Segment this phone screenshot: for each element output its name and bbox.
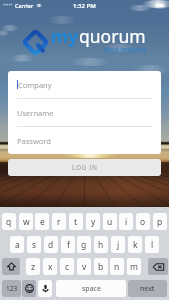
staticText: r: [57, 216, 61, 228]
staticText: g: [81, 239, 87, 251]
button[interactable]: b: [94, 258, 108, 275]
staticText: b: [98, 261, 104, 273]
staticText: u: [107, 216, 113, 228]
button[interactable]: t: [69, 213, 83, 230]
button[interactable]: Password: [17, 127, 161, 154]
button[interactable]: LOG IN: [8, 159, 161, 176]
button[interactable]: Username: [17, 99, 161, 126]
staticText: i: [125, 216, 128, 228]
button[interactable]: Backspace: [148, 258, 168, 275]
staticText: s: [32, 239, 37, 251]
button[interactable]: i: [119, 213, 133, 230]
staticText: d: [48, 239, 54, 251]
staticText: a: [15, 239, 20, 251]
staticText: quorum: [79, 24, 146, 48]
staticText: Carrier: [15, 2, 34, 9]
staticText: k: [133, 239, 138, 251]
button[interactable]: k: [128, 236, 142, 253]
button[interactable]: l: [145, 236, 159, 253]
button[interactable]: c: [60, 258, 74, 275]
button[interactable]: e: [35, 213, 49, 230]
button[interactable]: 123: [2, 280, 21, 297]
staticText: Username: [17, 108, 54, 118]
staticText: Company: [18, 80, 52, 90]
button[interactable]: z: [26, 258, 40, 275]
staticText: space: [82, 284, 101, 294]
button[interactable]: m: [127, 258, 141, 275]
button[interactable]: x: [43, 258, 57, 275]
button[interactable]: r: [52, 213, 66, 230]
staticText: my: [51, 24, 79, 48]
button[interactable]: y: [86, 213, 100, 230]
button[interactable]: q: [2, 213, 16, 230]
staticText: 1:32 PM: [73, 2, 96, 10]
button[interactable]: a: [10, 236, 24, 253]
staticText: h: [98, 239, 104, 251]
button[interactable]: h: [94, 236, 108, 253]
staticText: LOG IN: [72, 163, 98, 172]
button[interactable]: Dictate: [38, 280, 52, 297]
staticText: next: [140, 284, 155, 294]
button[interactable]: Shift: [2, 258, 20, 275]
staticText: q: [6, 216, 12, 228]
button[interactable]: space: [56, 280, 126, 297]
staticText: t: [74, 216, 78, 228]
button[interactable]: Company: [17, 71, 161, 98]
button[interactable]: g: [77, 236, 91, 253]
button[interactable]: d: [44, 236, 58, 253]
button[interactable]: o: [136, 213, 150, 230]
button[interactable]: j: [111, 236, 125, 253]
staticText: p: [157, 216, 163, 228]
button[interactable]: Emoji: [22, 280, 36, 297]
button[interactable]: p: [153, 213, 167, 230]
staticText: 123: [6, 284, 18, 293]
button[interactable]: f: [61, 236, 75, 253]
staticText: m: [130, 261, 138, 273]
staticText: x: [48, 261, 53, 273]
button[interactable]: n: [110, 258, 124, 275]
staticText: •••••: [3, 2, 13, 9]
staticText: Password: [17, 136, 51, 146]
staticText: n: [114, 261, 120, 273]
button[interactable]: next: [128, 280, 167, 297]
button[interactable]: v: [77, 258, 91, 275]
staticText: z: [31, 261, 35, 273]
staticText: y: [91, 216, 96, 228]
button[interactable]: u: [103, 213, 117, 230]
staticText: w: [23, 216, 30, 228]
staticText: c: [65, 261, 70, 273]
staticText: FIELD INSIGHTS: [104, 47, 147, 53]
staticText: f: [67, 239, 70, 251]
button[interactable]: w: [19, 213, 33, 230]
staticText: e: [40, 216, 45, 228]
staticText: v: [82, 261, 87, 273]
button[interactable]: s: [27, 236, 41, 253]
staticText: j: [117, 239, 120, 251]
staticText: l: [151, 239, 154, 251]
staticText: o: [140, 216, 146, 228]
